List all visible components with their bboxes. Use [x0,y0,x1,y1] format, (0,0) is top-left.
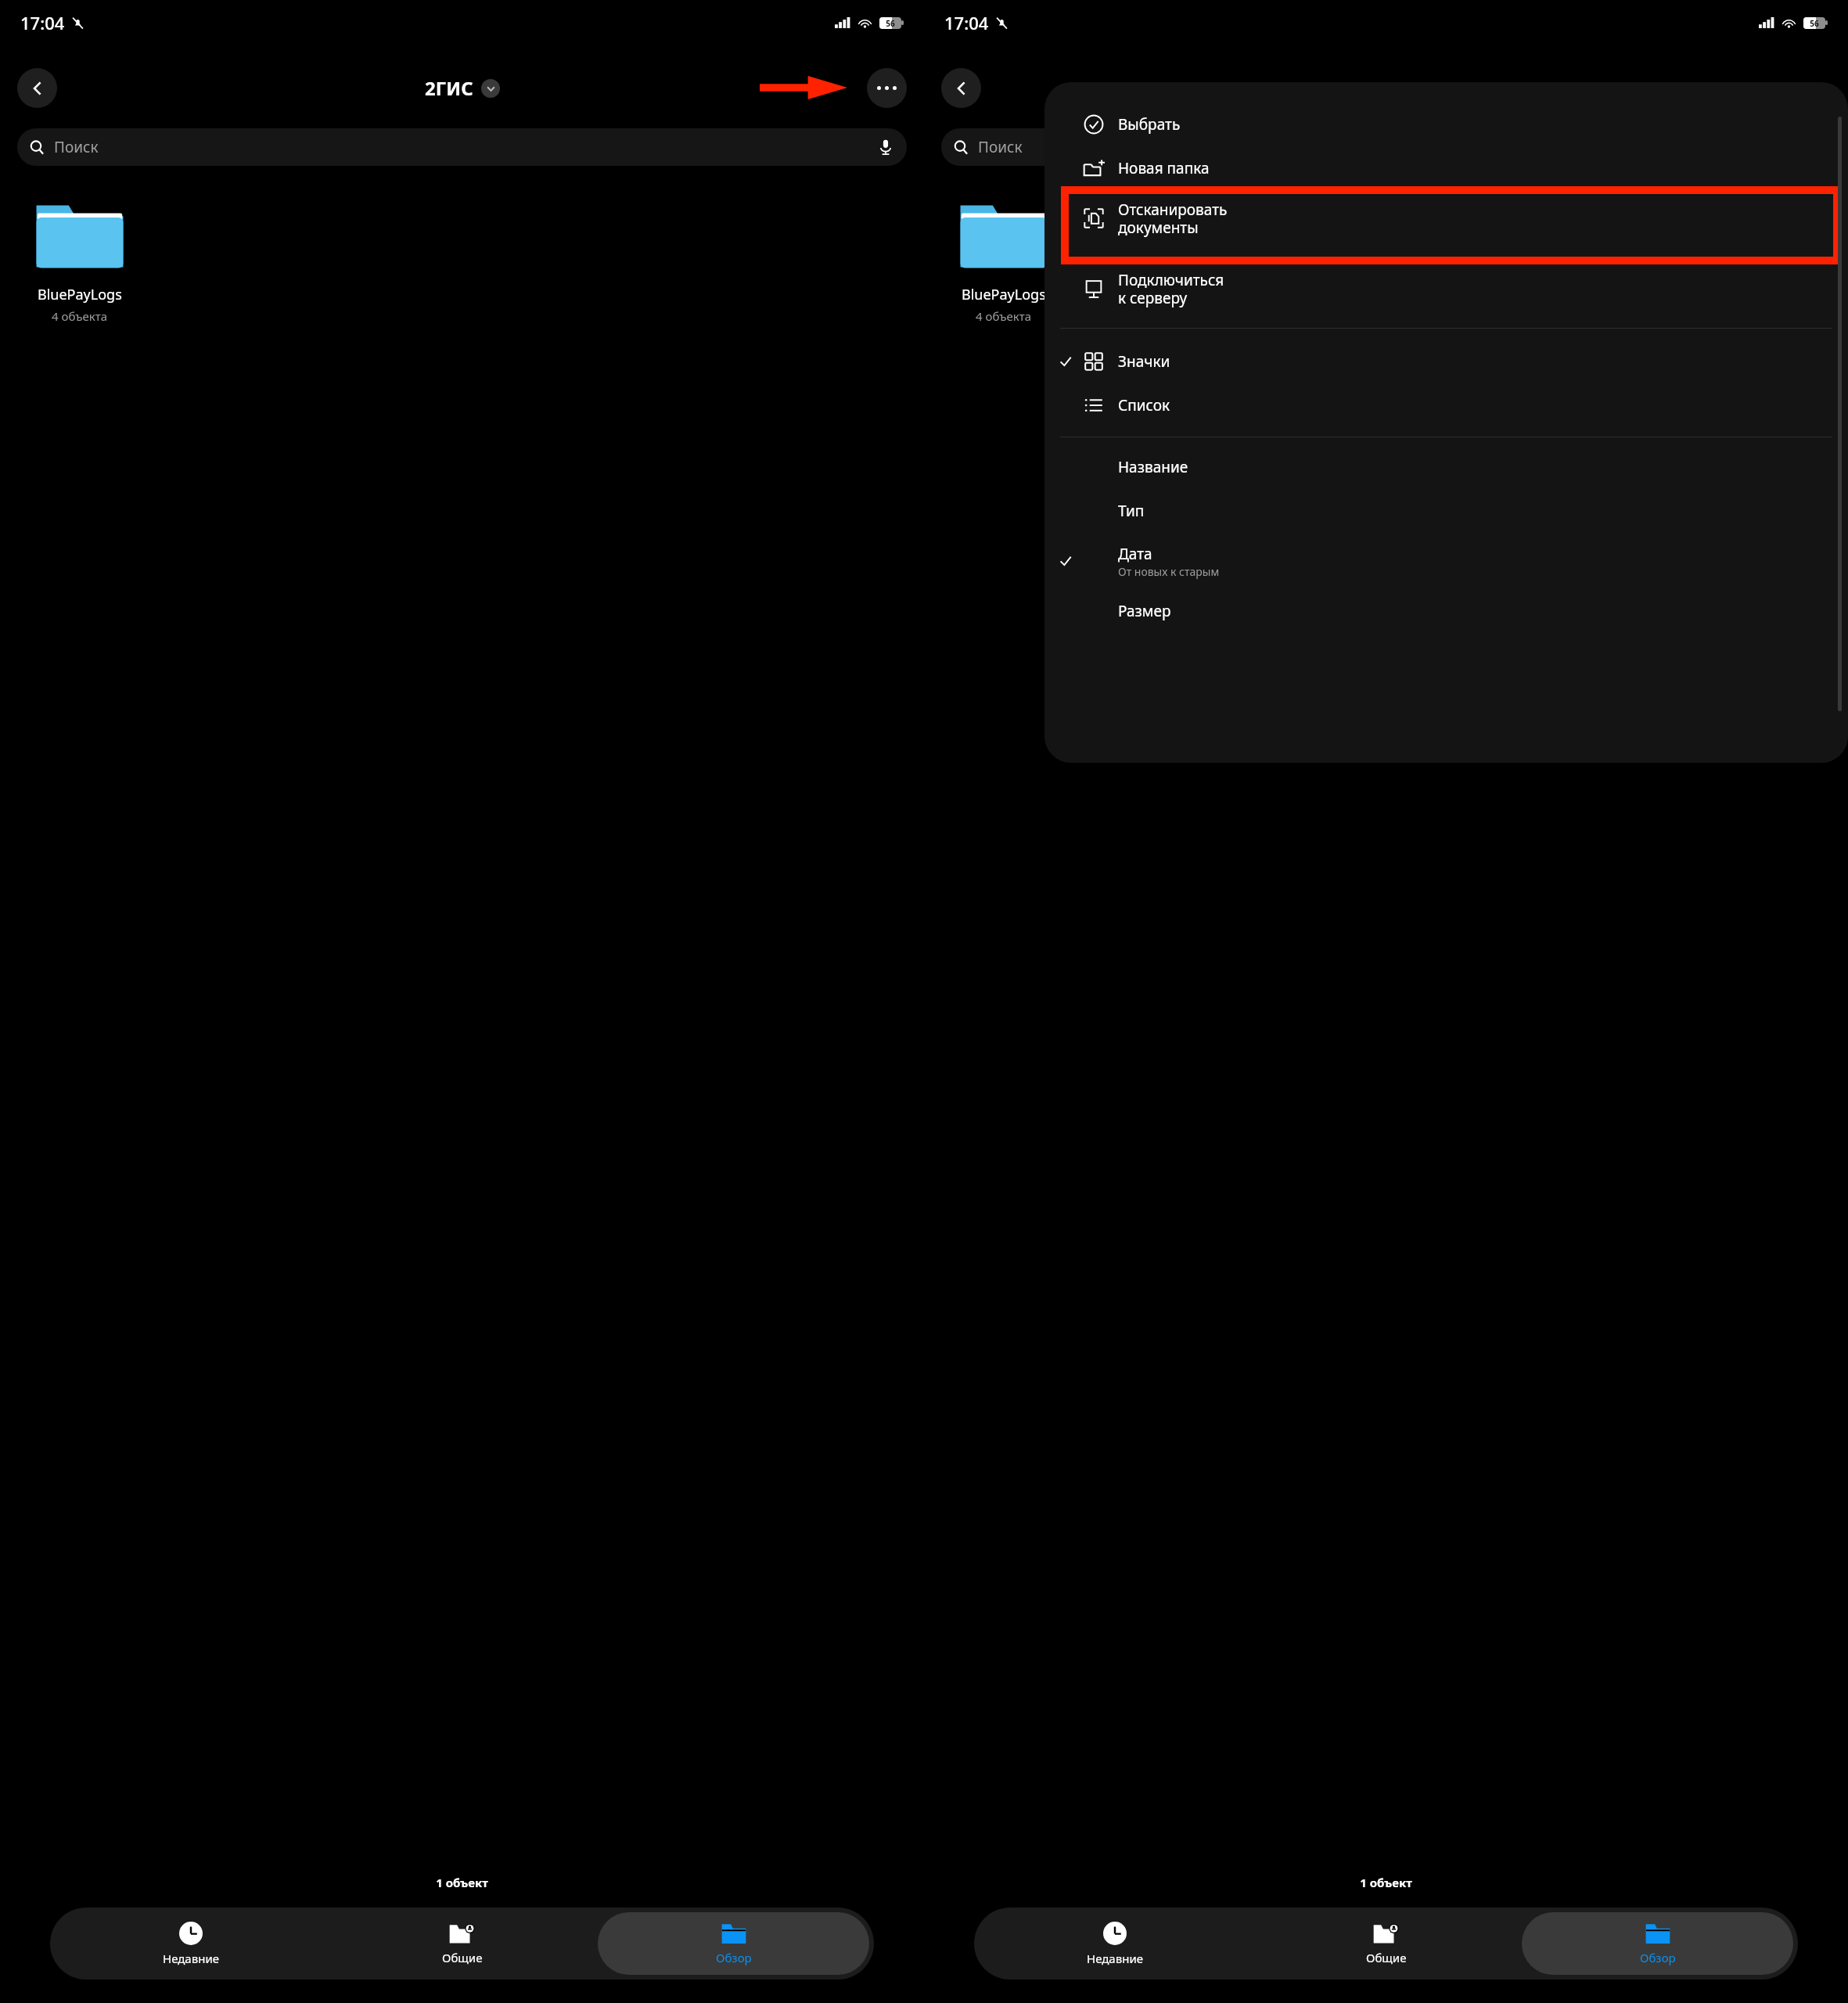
button[interactable]: Тип [1044,489,1848,533]
button[interactable]: BluePayLogs [17,200,142,324]
staticText: Новая папка [1118,158,1210,178]
button[interactable]: Выбрать [1044,102,1848,146]
staticText: Недавние [163,1951,219,1966]
staticText: Список [1118,395,1170,415]
staticText: Обзор [1640,1950,1676,1965]
button[interactable]: Дата [1044,533,1848,589]
staticText: Обзор [716,1950,752,1965]
staticText: Общие [1366,1950,1407,1965]
button[interactable]: BluePayLogs [941,200,1066,324]
staticText: Тип [1118,501,1145,521]
button[interactable]: Подключиться к серверу [1044,261,1848,317]
button[interactable]: Размер [1044,589,1848,633]
button[interactable]: Поиск [17,128,907,166]
button[interactable]: Значки [1044,340,1848,383]
staticText: 17:04 [20,11,65,34]
button[interactable]: Обзор [1522,1912,1793,1975]
staticText: 4 объекта [976,308,1032,324]
staticText: Дата [1118,544,1152,564]
staticText: Недавние [1087,1951,1143,1966]
button[interactable]: Отсканировать документы [1044,190,1848,246]
staticText: Поиск [54,137,99,157]
staticText: Размер [1118,601,1171,621]
button[interactable]: Back [941,68,981,108]
staticText: 1 объект [924,1875,1848,1890]
button[interactable]: Back [17,68,57,108]
staticText: Общие [442,1950,483,1965]
button[interactable]: 2ГИС [425,75,500,101]
staticText: Подключиться к серверу [1118,270,1224,308]
staticText: Название [1118,457,1188,477]
staticText: 2ГИС [425,75,473,101]
staticText: 4 объекта [52,308,108,324]
staticText: 56 [1803,18,1825,29]
button[interactable]: Поиск [941,128,1831,166]
other: Voice search [877,138,894,156]
button[interactable]: Недавние [55,1912,326,1975]
button[interactable]: More [867,68,907,108]
button[interactable]: Общие [326,1912,598,1975]
button[interactable]: Новая папка [1044,146,1848,190]
staticText: Поиск [978,137,1023,157]
staticText: Значки [1118,351,1170,372]
staticText: BluePayLogs [962,285,1046,304]
staticText: 1 объект [0,1875,924,1890]
button[interactable]: Обзор [598,1912,869,1975]
staticText: Выбрать [1118,114,1181,135]
staticText: Отсканировать документы [1118,200,1228,238]
staticText: BluePayLogs [38,285,122,304]
button[interactable]: Общие [1250,1912,1522,1975]
button[interactable]: Название [1044,445,1848,489]
staticText: 56 [879,18,901,29]
staticText: От новых к старым [1118,564,1220,579]
button[interactable]: Список [1044,383,1848,427]
staticText: 17:04 [944,11,989,34]
button[interactable]: Недавние [979,1912,1250,1975]
